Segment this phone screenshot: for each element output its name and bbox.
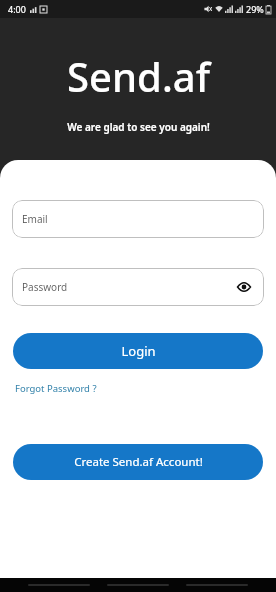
staticText: 4:00 bbox=[8, 3, 26, 15]
staticText: Login bbox=[121, 342, 156, 360]
staticText: We are glad to see you again! bbox=[67, 120, 210, 134]
button[interactable]: Create Send.af Account! bbox=[13, 444, 263, 480]
staticText: Forgot Password ? bbox=[15, 382, 97, 395]
button[interactable]: Email bbox=[12, 200, 264, 238]
button[interactable]: Password bbox=[12, 268, 264, 306]
staticText: Email bbox=[22, 212, 48, 226]
staticText: Password bbox=[22, 280, 68, 294]
button[interactable]: Login bbox=[13, 333, 263, 369]
staticText: 29% bbox=[246, 3, 264, 15]
button[interactable]: Show password bbox=[234, 277, 254, 297]
button[interactable]: Forgot Password ? bbox=[14, 380, 98, 397]
staticText: Send.af bbox=[67, 49, 210, 103]
staticText: Create Send.af Account! bbox=[74, 454, 203, 470]
